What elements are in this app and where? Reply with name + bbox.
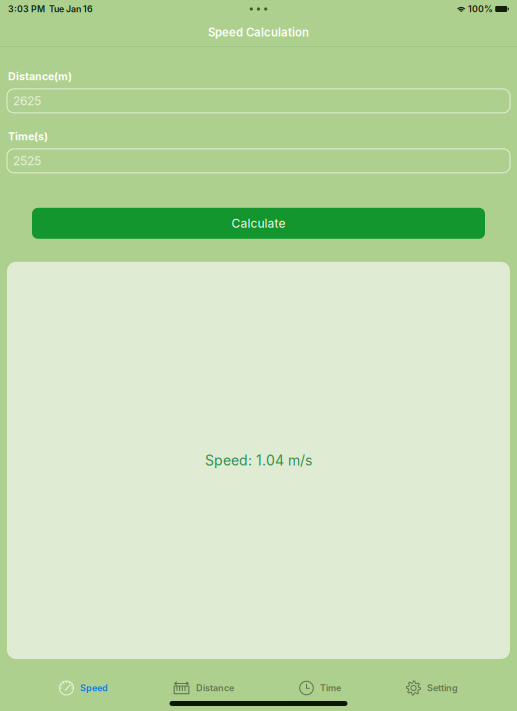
button[interactable]: Setting: [406, 679, 458, 697]
staticText: 3:03 PM: [8, 4, 45, 14]
staticText: 100%: [466, 4, 495, 14]
staticText: Time(s): [8, 130, 48, 143]
staticText: Time: [320, 682, 341, 693]
staticText: 2625: [13, 94, 41, 108]
staticText: Speed: [80, 682, 108, 693]
button[interactable]: Time: [299, 679, 341, 697]
staticText: Setting: [427, 682, 458, 693]
staticText: 2525: [13, 154, 41, 168]
staticText: Calculate: [231, 216, 285, 231]
button[interactable]: Speed: [59, 679, 108, 697]
button[interactable]: Calculate: [32, 208, 485, 239]
staticText: Tue Jan 16: [45, 4, 93, 14]
staticText: Speed Calculation: [208, 26, 309, 39]
button[interactable]: Distance: [173, 679, 234, 697]
staticText: Distance: [196, 682, 234, 693]
staticText: Speed: 1.04 m/s: [205, 452, 312, 469]
staticText: Distance(m): [8, 70, 72, 83]
